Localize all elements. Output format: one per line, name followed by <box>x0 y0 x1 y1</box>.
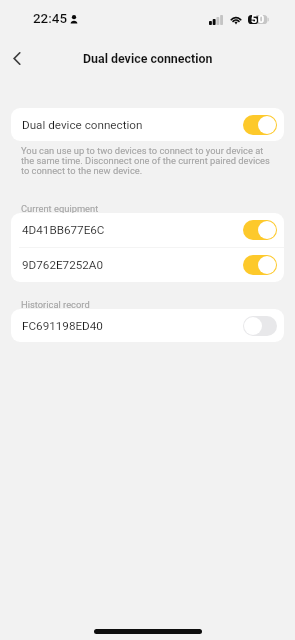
button[interactable]: Disabled <box>243 316 277 336</box>
button[interactable]: Enabled <box>243 255 277 275</box>
button[interactable]: Dual device connection <box>11 108 284 141</box>
staticText: 22:45 <box>33 11 67 27</box>
button[interactable]: 4D41BB677E6C <box>11 213 284 247</box>
staticText: Current equipment <box>21 203 99 214</box>
staticText: 0 <box>258 13 265 26</box>
staticText: 9D762E7252A0 <box>22 258 104 272</box>
button[interactable]: Enabled <box>243 115 277 135</box>
button[interactable]: 9D762E7252A0 <box>11 248 284 282</box>
staticText: 4D41BB677E6C <box>22 223 105 237</box>
button[interactable]: Enabled <box>243 220 277 240</box>
staticText: Dual device connection <box>22 118 143 132</box>
button[interactable]: Back <box>3 44 31 72</box>
staticText: You can use up to two devices to connect… <box>21 145 274 176</box>
staticText: Dual device connection <box>83 51 213 66</box>
button[interactable]: FC691198ED40 <box>11 309 284 342</box>
staticText: 5 <box>251 13 258 26</box>
staticText: Historical record <box>21 299 90 310</box>
staticText: FC691198ED40 <box>22 319 103 333</box>
